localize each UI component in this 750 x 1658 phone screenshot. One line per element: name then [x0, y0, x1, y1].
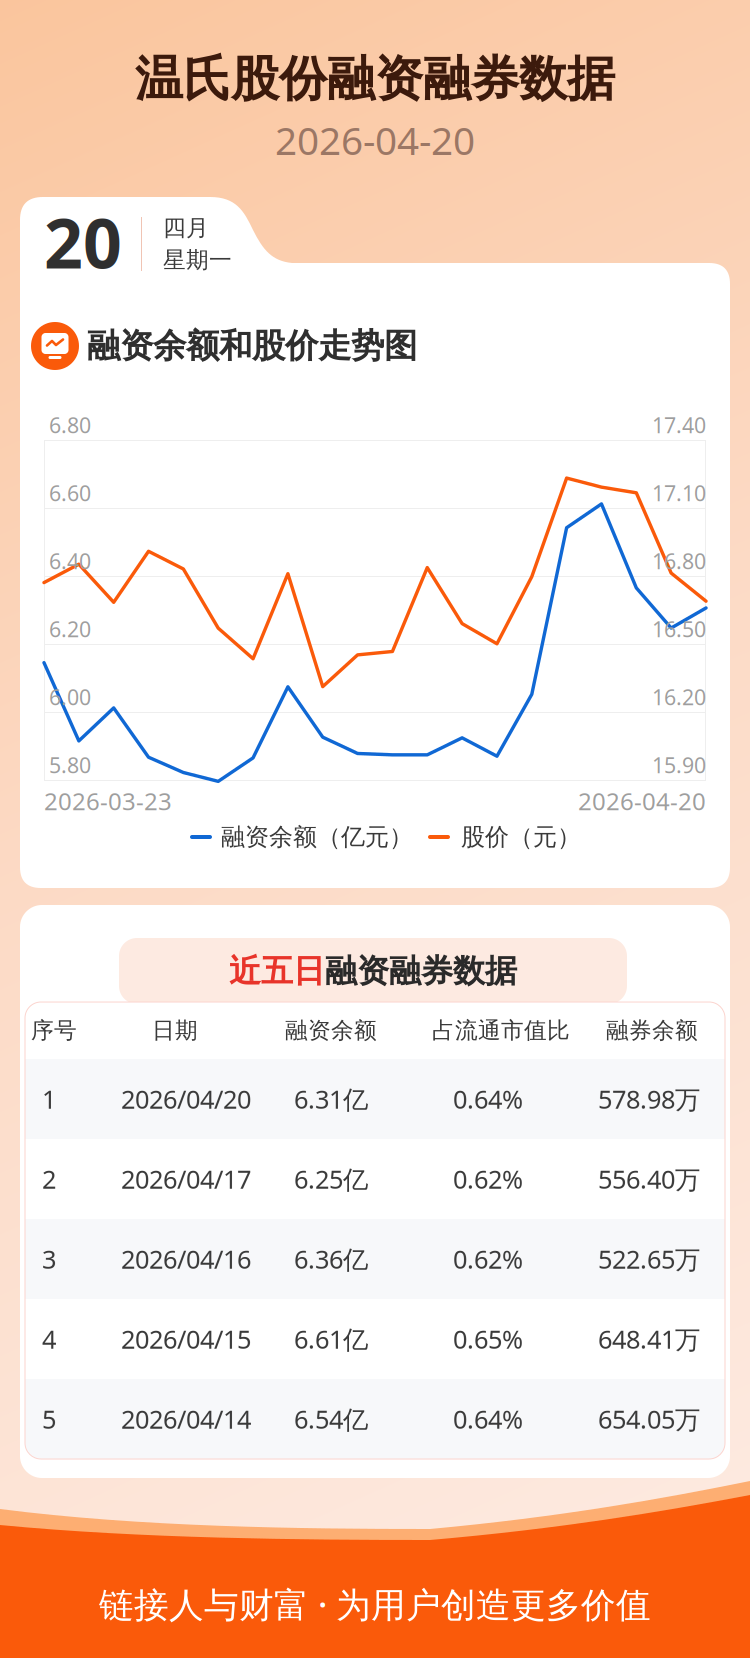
staticText: 融资余额	[285, 1017, 377, 1044]
staticText: 16.20	[652, 683, 706, 711]
staticText: 0.62%	[453, 1162, 523, 1196]
staticText: 6.00	[49, 683, 91, 711]
staticText: 近五日	[229, 951, 325, 991]
staticText: 556.40万	[598, 1162, 700, 1196]
staticText: 17.10	[652, 479, 706, 507]
staticText: 522.65万	[598, 1242, 700, 1276]
staticText: 日期	[152, 1017, 198, 1044]
staticText: 占流通市值比	[432, 1017, 570, 1044]
staticText: 2026/04/16	[121, 1242, 251, 1276]
staticText: 17.40	[652, 411, 706, 439]
staticText: 2026/04/14	[121, 1402, 251, 1436]
staticText: 4	[42, 1322, 56, 1356]
staticText: 融资融券数据	[325, 951, 517, 991]
staticText: 578.98万	[598, 1082, 700, 1116]
staticText: 1	[42, 1082, 56, 1116]
staticText: 5.80	[49, 751, 91, 779]
staticText: 温氏股份融资融券数据	[135, 49, 615, 108]
staticText: 16.50	[652, 615, 706, 643]
staticText: 2026-04-20	[275, 114, 475, 166]
staticText: 四月	[163, 214, 209, 242]
staticText: 0.62%	[453, 1242, 523, 1276]
staticText: 654.05万	[598, 1402, 700, 1436]
staticText: 6.54亿	[294, 1402, 368, 1436]
staticText: 股价（元）	[461, 822, 581, 852]
staticText: 2026/04/20	[121, 1082, 251, 1116]
staticText: 2026/04/17	[121, 1162, 251, 1196]
staticText: 648.41万	[598, 1322, 700, 1356]
staticText: 2026-04-20	[578, 785, 706, 817]
staticText: 序号	[31, 1017, 77, 1044]
staticText: 6.20	[49, 615, 91, 643]
staticText: 融资余额（亿元）	[221, 822, 413, 852]
staticText: 6.40	[49, 547, 91, 575]
staticText: 6.61亿	[294, 1322, 368, 1356]
staticText: 5	[42, 1402, 56, 1436]
staticText: 0.65%	[453, 1322, 523, 1356]
staticText: 星期一	[163, 246, 232, 274]
staticText: 6.31亿	[294, 1082, 368, 1116]
staticText: 16.80	[652, 547, 706, 575]
staticText: 6.25亿	[294, 1162, 368, 1196]
staticText: 6.80	[49, 411, 91, 439]
staticText: 20	[44, 197, 122, 287]
staticText: 0.64%	[453, 1402, 523, 1436]
staticText: 6.36亿	[294, 1242, 368, 1276]
staticText: 链接人与财富 · 为用户创造更多价值	[99, 1581, 651, 1627]
staticText: 6.60	[49, 479, 91, 507]
staticText: 融券余额	[606, 1017, 698, 1044]
staticText: 2	[42, 1162, 56, 1196]
staticText: 融资余额和股价走势图	[87, 325, 417, 366]
staticText: 3	[42, 1242, 56, 1276]
staticText: 2026-03-23	[44, 785, 172, 817]
staticText: 0.64%	[453, 1082, 523, 1116]
staticText: 2026/04/15	[121, 1322, 251, 1356]
staticText: 15.90	[652, 751, 706, 779]
